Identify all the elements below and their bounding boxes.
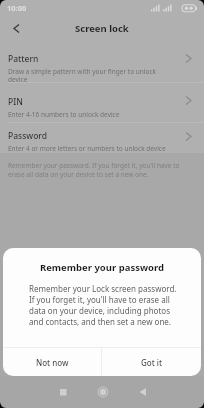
staticText: 10:00 bbox=[7, 3, 27, 13]
staticText: Screen lock bbox=[75, 22, 129, 35]
staticText: Enter 4-16 numbers to unlock device bbox=[8, 110, 120, 119]
staticText: Remember your Lock screen password. If y… bbox=[29, 283, 177, 327]
staticText: Remember your password. If you forget it… bbox=[8, 161, 180, 179]
button[interactable] bbox=[14, 24, 19, 33]
staticText: Enter 4 or more letters or numbers to un… bbox=[8, 144, 166, 153]
button[interactable]: Not now bbox=[3, 348, 101, 376]
button[interactable]: Pattern bbox=[0, 41, 204, 82]
staticText: Password bbox=[8, 130, 48, 142]
staticText: PIN bbox=[8, 96, 23, 108]
button[interactable]: Got it bbox=[102, 348, 201, 376]
staticText: Remember your password bbox=[3, 261, 201, 274]
staticText: Draw a simple pattern with your finger t… bbox=[8, 67, 157, 82]
staticText: Not now bbox=[36, 357, 69, 368]
button[interactable]: Password bbox=[0, 123, 204, 153]
button[interactable]: PIN bbox=[0, 83, 204, 122]
staticText: Got it bbox=[141, 357, 163, 368]
staticText: Pattern bbox=[8, 53, 39, 65]
